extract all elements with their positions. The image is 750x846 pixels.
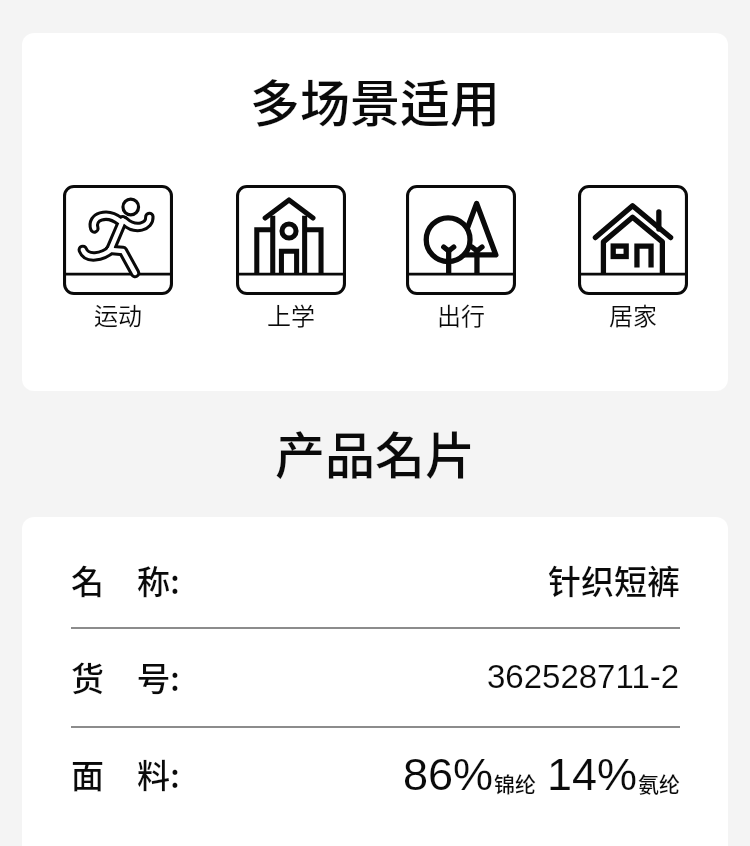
staticText: 362528711-2 — [487, 658, 680, 695]
button[interactable]: 名 称: — [71, 539, 680, 620]
staticText: 86% — [403, 749, 494, 799]
button[interactable]: 运动 — [63, 185, 173, 295]
staticText: 多场景适用 — [22, 64, 728, 136]
staticText: 居家 — [609, 297, 657, 332]
button[interactable]: 居家 — [578, 185, 688, 295]
staticText: 货 号: — [71, 653, 180, 701]
staticText: 名 称: — [71, 556, 180, 604]
staticText: 上学 — [267, 297, 315, 332]
staticText: 14% — [547, 749, 638, 799]
staticText: 针织短裤 — [548, 556, 680, 604]
button[interactable]: 出行 — [406, 185, 516, 295]
staticText: 锦纶 — [494, 768, 536, 798]
staticText: 产品名片 — [0, 416, 750, 488]
button[interactable]: 货 号: — [71, 629, 680, 724]
button[interactable]: 上学 — [236, 185, 346, 295]
staticText: 运动 — [94, 297, 142, 332]
staticText: 氨纶 — [638, 768, 680, 798]
button[interactable]: 面 料: — [71, 726, 680, 822]
staticText: 出行 — [437, 297, 485, 332]
staticText: 面 料: — [71, 750, 180, 798]
